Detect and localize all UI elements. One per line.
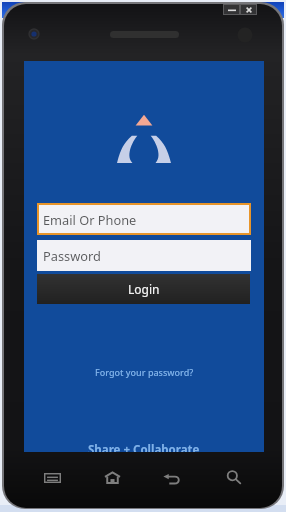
staticText: Password [43, 247, 101, 264]
button[interactable]: Login [37, 274, 250, 304]
staticText: Share + Collaborate [88, 442, 200, 452]
button[interactable]: Email Or Phone [39, 205, 249, 233]
button[interactable]: Password [37, 240, 251, 271]
button[interactable]: Search [215, 463, 253, 492]
button[interactable]: Forgot your password? [91, 364, 198, 380]
staticText: Forgot your password? [95, 366, 194, 378]
button[interactable]: Recents [32, 465, 73, 491]
staticText: Email Or Phone [43, 211, 137, 228]
staticText: Login [128, 281, 160, 297]
button[interactable]: Back [151, 465, 193, 493]
button[interactable]: Home [92, 463, 133, 492]
button[interactable]: Close [240, 4, 257, 15]
button[interactable]: Minimize [223, 4, 240, 15]
